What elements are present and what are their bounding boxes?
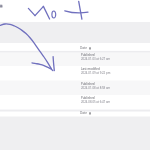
staticText: Date: [80, 111, 88, 115]
staticText: 2024-01-03 at 6:27 am: [81, 57, 111, 61]
staticText: 2024-01-09 at 9:22 pm: [81, 71, 111, 75]
staticText: 2024-01-08 at 8:58 am: [81, 86, 111, 90]
button[interactable]: Published: [0, 95, 150, 110]
staticText: Last modified: [81, 67, 100, 71]
button[interactable]: Published: [0, 81, 150, 96]
staticText: 2024-08-05 at 6:47 am: [81, 100, 111, 104]
button[interactable]: Date: [0, 43, 150, 52]
button[interactable]: Last modified: [0, 66, 150, 81]
button[interactable]: Date: [80, 111, 91, 115]
other: Handwritten annotation: [0, 0, 150, 150]
staticText: Published: [81, 53, 95, 57]
staticText: Published: [81, 82, 95, 86]
staticText: Published: [81, 96, 95, 100]
button[interactable]: Date: [0, 110, 150, 117]
staticText: Date: [80, 46, 88, 50]
button[interactable]: Published: [0, 52, 150, 67]
button[interactable]: Date: [80, 46, 91, 50]
